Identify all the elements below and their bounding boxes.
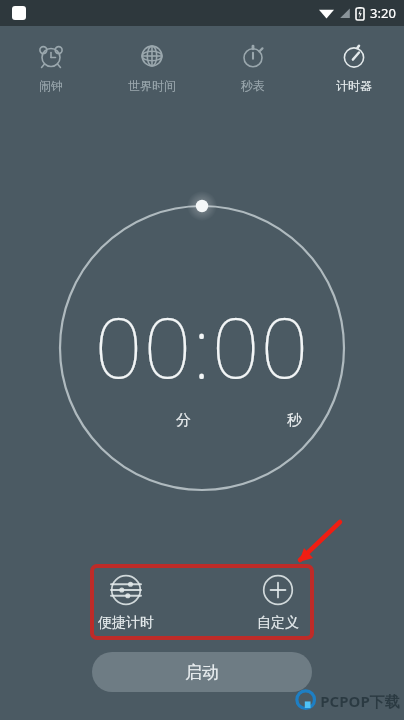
button[interactable]: 闹钟 [0, 26, 101, 108]
staticText: 自定义 [257, 614, 299, 632]
staticText: 3:20 [370, 4, 396, 22]
staticText: 世界时间 [128, 78, 176, 93]
staticText: 启动 [185, 662, 219, 683]
staticText: 闹钟 [39, 78, 63, 93]
button[interactable]: 自定义 [230, 573, 326, 632]
staticText: 秒 [287, 411, 302, 430]
staticText: 分 [176, 411, 191, 430]
button[interactable]: 计时器 [303, 26, 404, 108]
staticText: 便捷计时 [98, 614, 154, 632]
button[interactable]: 启动 [92, 652, 312, 692]
staticText: 秒表 [241, 78, 265, 93]
button[interactable]: 便捷计时 [78, 573, 174, 632]
staticText: PCPOP下载 [320, 691, 400, 711]
staticText: 00:00 [94, 288, 310, 402]
button[interactable]: 世界时间 [101, 26, 202, 108]
button[interactable]: 秒表 [202, 26, 303, 108]
staticText: 计时器 [336, 78, 372, 93]
